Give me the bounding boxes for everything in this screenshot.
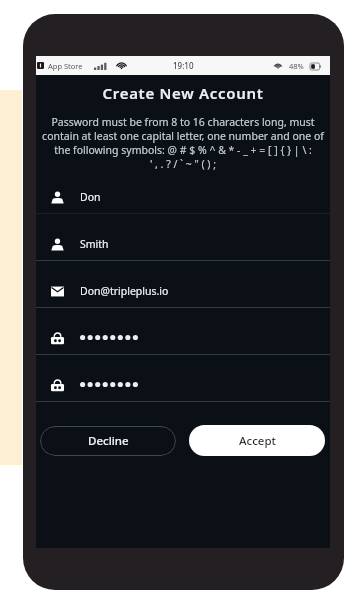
button[interactable] (36, 355, 330, 401)
staticText: 19:10 (173, 60, 194, 71)
staticText: Smith (80, 237, 109, 251)
staticText: App Store (48, 61, 83, 71)
button[interactable]: Accept (189, 425, 325, 456)
staticText: 48% (289, 61, 304, 71)
staticText: Create New Account (36, 83, 330, 103)
staticText: Don@tripleplus.io (80, 284, 169, 298)
staticText: Don (80, 190, 101, 204)
button[interactable]: Don@tripleplus.io (36, 261, 330, 307)
staticText: Decline (88, 433, 129, 449)
button[interactable] (36, 308, 330, 354)
button[interactable]: Smith (36, 214, 330, 260)
staticText: Accept (239, 433, 276, 449)
button[interactable]: Don (36, 167, 330, 213)
staticText: Password must be from 8 to 16 characters… (40, 115, 326, 171)
button[interactable]: Decline (40, 426, 176, 456)
